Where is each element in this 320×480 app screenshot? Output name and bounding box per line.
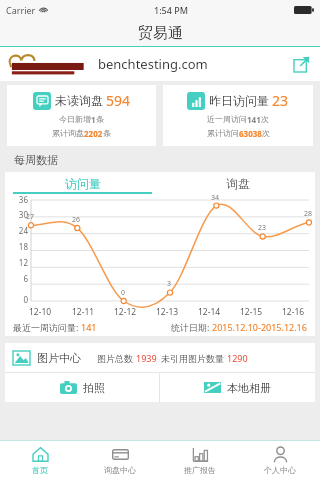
staticText: 未引用图片数量 (161, 352, 227, 364)
staticText: 12-15 (240, 306, 263, 318)
staticText: 首页 (32, 465, 48, 475)
staticText: Carrier (6, 4, 36, 16)
staticText: 23 (272, 91, 289, 110)
staticText: 2015.12.10-2015.12.16 (212, 321, 307, 333)
button[interactable]: 拍照 (5, 373, 159, 402)
button[interactable]: 访问量 (5, 172, 160, 194)
staticText: 最近一周访问量: (13, 321, 81, 333)
staticText: 34 (211, 193, 220, 203)
staticText: 推广报告 (184, 465, 216, 475)
button[interactable]: 个人中心 (240, 441, 320, 480)
staticText: 1939 (136, 352, 157, 364)
staticText: 未读询盘 (55, 93, 103, 108)
staticText: 30 (18, 209, 28, 220)
staticText: 12-14 (198, 306, 221, 318)
staticText: 昨日访问量 (209, 93, 269, 108)
staticText: 个人中心 (264, 465, 296, 475)
staticText: 统计日期: (171, 321, 212, 333)
staticText: 贸易通 (138, 24, 183, 43)
staticText: 图片中心 (37, 351, 81, 365)
button[interactable]: 询盘 (160, 172, 315, 194)
staticText: 12-10 (29, 306, 52, 318)
staticText: benchtesting.com (98, 55, 208, 73)
staticText: 2202 (84, 128, 103, 139)
button[interactable]: 本地相册 (160, 373, 315, 402)
staticText: 141 (81, 321, 97, 333)
staticText: 条 (96, 114, 104, 124)
staticText: 0 (23, 294, 28, 305)
staticText: 1 (91, 114, 96, 125)
staticText: 18 (18, 241, 28, 252)
button[interactable]: Open website (290, 53, 312, 75)
staticText: 12 (18, 257, 28, 268)
staticText: 12-12 (114, 306, 137, 318)
staticText: 12-16 (282, 306, 305, 318)
staticText: 12-11 (72, 306, 95, 318)
button[interactable]: 昨日访问量 (163, 85, 313, 146)
staticText: 26 (72, 215, 81, 225)
staticText: 每周数据 (14, 153, 58, 167)
staticText: 141 (247, 114, 261, 125)
staticText: 6 (23, 273, 28, 284)
staticText: 次 (261, 114, 269, 124)
staticText: 0 (121, 288, 126, 298)
staticText: 12-13 (156, 306, 179, 318)
staticText: 近一周访问 (207, 114, 247, 124)
staticText: 累计访问 (207, 128, 239, 138)
staticText: 1290 (227, 352, 248, 364)
staticText: 累计询盘 (52, 128, 84, 138)
button[interactable]: 未读询盘 (7, 85, 156, 146)
staticText: 24 (18, 225, 28, 236)
staticText: 询盘 (226, 176, 250, 191)
staticText: 28 (304, 209, 313, 219)
button[interactable]: 首页 (0, 441, 80, 480)
staticText: 23 (258, 223, 267, 233)
staticText: 本地相册 (227, 381, 271, 395)
staticText: 访问量 (65, 176, 101, 191)
button[interactable]: 询盘中心 (80, 441, 160, 480)
staticText: 条 (103, 128, 111, 138)
staticText: 今日新增 (59, 114, 91, 124)
staticText: 次 (262, 128, 270, 138)
staticText: 27 (26, 212, 35, 222)
staticText: 36 (18, 194, 28, 205)
staticText: 图片总数 (97, 352, 136, 364)
staticText: 3 (167, 279, 172, 289)
staticText: 询盘中心 (104, 465, 136, 475)
staticText: 拍照 (83, 381, 105, 395)
staticText: 1:54 PM (154, 4, 188, 16)
staticText: 594 (106, 91, 131, 110)
staticText: 63038 (239, 128, 262, 139)
button[interactable]: 图片中心 (5, 343, 315, 372)
button[interactable]: 推广报告 (160, 441, 240, 480)
